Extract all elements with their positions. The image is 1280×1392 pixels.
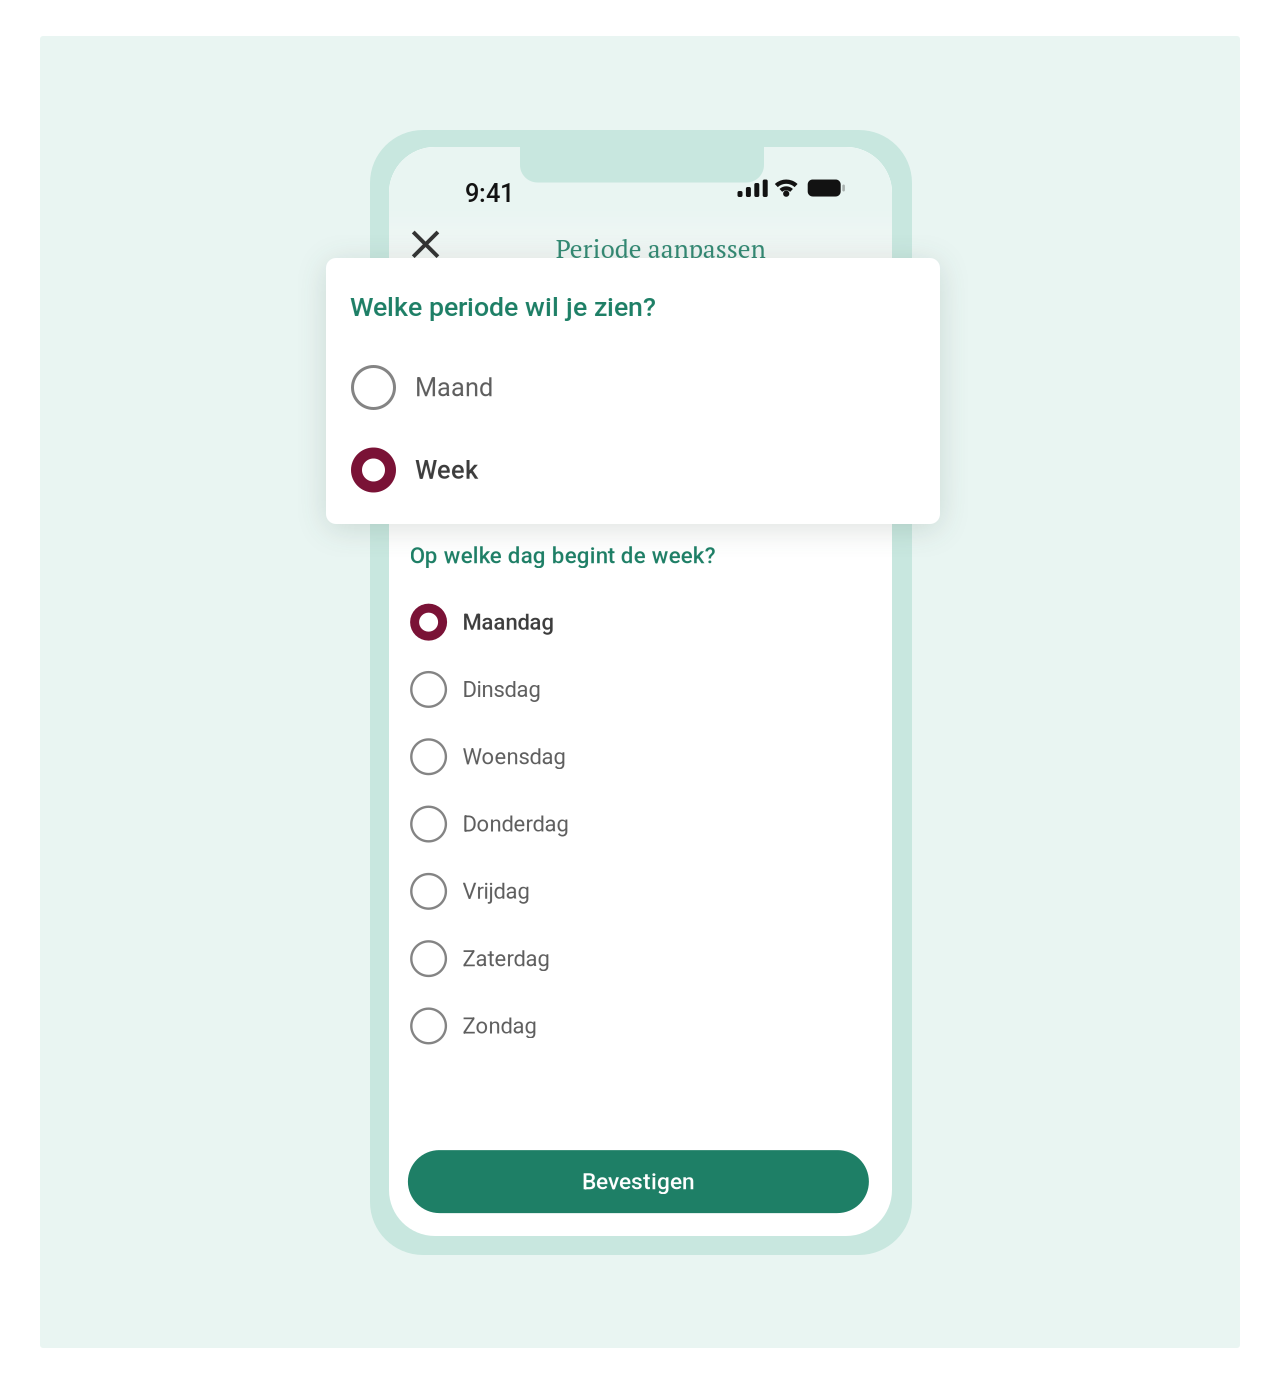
staticText: Woensdag xyxy=(463,744,566,770)
staticText: Op welke dag begint de week? xyxy=(410,543,716,569)
staticText: Zaterdag xyxy=(463,946,550,972)
staticText: Maandag xyxy=(463,609,554,635)
staticText: Bevestigen xyxy=(582,1168,695,1195)
staticText: Vrijdag xyxy=(463,878,530,904)
staticText: 9:41 xyxy=(465,178,514,208)
button[interactable]: Sluiten xyxy=(406,225,445,264)
staticText: Maand xyxy=(415,373,493,402)
button[interactable]: Zaterdag xyxy=(410,925,871,992)
button[interactable]: Woensdag xyxy=(410,723,871,790)
button[interactable]: Maandag xyxy=(410,588,871,656)
staticText: Week xyxy=(415,455,478,485)
staticText: Dinsdag xyxy=(463,677,541,702)
button[interactable]: Maand xyxy=(326,354,940,420)
staticText: Periode aanpassen xyxy=(556,232,766,265)
button[interactable]: Week xyxy=(326,437,940,503)
staticText: Donderdag xyxy=(463,811,569,837)
button[interactable]: Bevestigen xyxy=(408,1150,869,1213)
button[interactable]: Zondag xyxy=(410,992,871,1060)
button[interactable]: Vrijdag xyxy=(410,858,871,925)
button[interactable]: Donderdag xyxy=(410,790,871,858)
staticText: Zondag xyxy=(463,1013,537,1039)
button[interactable]: Dinsdag xyxy=(410,656,871,723)
staticText: Welke periode wil je zien? xyxy=(350,291,656,323)
